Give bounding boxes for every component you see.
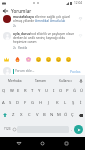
button[interactable]: V <box>33 109 41 121</box>
staticText: İ <box>80 100 82 106</box>
staticText: Kullanıcı <box>59 79 72 83</box>
staticText: X <box>20 112 23 118</box>
staticText: C <box>28 112 31 118</box>
button[interactable]: Backspace <box>76 109 85 121</box>
button[interactable]: Merhaba <box>2 75 28 86</box>
button[interactable]: ayla_durushod elbirlik ve paylaşım olsun… <box>0 32 85 51</box>
button[interactable]: G <box>29 96 37 109</box>
button[interactable]: B <box>41 109 48 121</box>
staticText: S <box>9 100 12 106</box>
staticText: Ü <box>80 88 84 94</box>
staticText: Ğ <box>73 88 77 94</box>
button[interactable]: D <box>14 96 21 109</box>
button[interactable]: U <box>43 86 50 96</box>
staticText: Z <box>12 112 15 118</box>
button[interactable]: Back <box>13 138 24 149</box>
staticText: U <box>45 88 49 94</box>
button[interactable]: N <box>48 109 55 121</box>
staticText: F <box>24 100 27 106</box>
staticText: Yorum ekle... <box>15 69 35 73</box>
button[interactable]: Paylaş <box>69 67 82 75</box>
button[interactable]: Like <box>77 32 83 38</box>
staticText: Q <box>2 88 6 94</box>
button[interactable]: Kullanıcı <box>53 75 78 86</box>
staticText: ayla_durushod elbirlik ve paylaşım olsun… <box>13 32 76 44</box>
button[interactable]: K <box>53 96 61 109</box>
button[interactable]: Y <box>36 86 43 96</box>
staticText: 12:04 <box>74 1 83 5</box>
button[interactable]: React with face3 <box>53 57 63 62</box>
button[interactable]: J <box>45 96 53 109</box>
button[interactable]: React with face1 <box>33 57 43 62</box>
button[interactable]: Ü <box>78 86 85 96</box>
staticText: Yorumlar <box>11 8 32 14</box>
button[interactable]: Back <box>0 6 11 15</box>
staticText: L <box>64 100 67 106</box>
staticText: D <box>16 100 20 106</box>
staticText: Tamam <box>35 79 47 83</box>
staticText: mustafakaya ellerine sağlık çok güzel ol… <box>13 15 76 23</box>
staticText: N <box>50 112 54 118</box>
button[interactable]: F <box>21 96 29 109</box>
button[interactable]: I <box>50 86 57 96</box>
button[interactable]: React with crown <box>1 57 12 62</box>
staticText: ?123 <box>4 127 11 131</box>
button[interactable]: S <box>7 96 14 109</box>
staticText: 2s <box>13 46 16 50</box>
button[interactable]: Ö <box>62 109 69 121</box>
staticText: Merhaba <box>8 79 22 83</box>
button[interactable]: H <box>37 96 45 109</box>
button[interactable]: Voice input <box>78 75 84 86</box>
button[interactable]: Like <box>77 15 83 21</box>
staticText: 2s <box>13 24 16 28</box>
button[interactable]: Emoji <box>12 121 17 137</box>
button[interactable]: L <box>61 96 69 109</box>
staticText: Yanıtla <box>18 46 28 50</box>
button[interactable]: Ç <box>69 109 76 121</box>
staticText: I <box>53 88 55 94</box>
button[interactable]: Ğ <box>71 86 78 96</box>
button[interactable]: R <box>22 86 29 96</box>
button[interactable]: Recents <box>61 138 72 149</box>
staticText: B <box>43 112 46 118</box>
button[interactable]: Z <box>9 109 17 121</box>
staticText: . <box>71 127 73 132</box>
button[interactable]: P <box>64 86 71 96</box>
button[interactable]: Ş <box>69 96 77 109</box>
button[interactable]: E <box>15 86 22 96</box>
button[interactable]: A <box>0 96 7 109</box>
button[interactable]: İ <box>77 96 85 109</box>
staticText: H <box>39 100 43 106</box>
button[interactable]: Send <box>74 125 83 134</box>
button[interactable]: React with face4 <box>63 57 73 62</box>
button[interactable]: M <box>55 109 62 121</box>
staticText: Ö <box>64 112 68 118</box>
staticText: P <box>66 88 69 94</box>
button[interactable]: mustafakaya ellerine sağlık çok güzel ol… <box>0 15 85 32</box>
button[interactable]: ?123 <box>2 121 12 137</box>
staticText: E <box>17 88 20 94</box>
button[interactable]: C <box>25 109 33 121</box>
staticText: Y <box>38 88 41 94</box>
button[interactable]: React with flower <box>23 57 33 62</box>
button[interactable]: T <box>29 86 36 96</box>
button[interactable]: React with fire <box>12 57 23 62</box>
staticText: Ş <box>72 100 75 106</box>
staticText: K <box>56 100 59 106</box>
staticText: V <box>36 112 39 118</box>
button[interactable]: O <box>57 86 64 96</box>
button[interactable]: Yanıtla <box>18 46 28 50</box>
button[interactable]: X <box>17 109 25 121</box>
button[interactable]: Tamam <box>28 75 53 86</box>
button[interactable]: Shift <box>0 109 9 121</box>
button[interactable]: Home <box>37 138 48 149</box>
button[interactable]: Q <box>0 86 8 96</box>
button[interactable]: React with face2 <box>43 57 53 62</box>
button[interactable]: W <box>8 86 15 96</box>
staticText: T <box>31 88 34 94</box>
staticText: M <box>57 112 61 118</box>
staticText: G <box>31 100 35 106</box>
staticText: Paylaş <box>70 69 81 73</box>
